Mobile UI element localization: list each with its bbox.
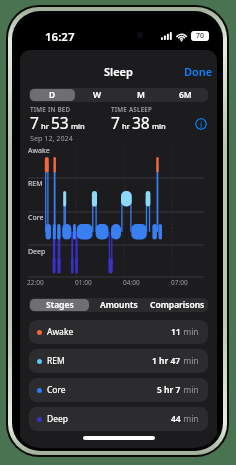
button[interactable]: Comparisons [148, 299, 207, 311]
staticText: 7 [30, 112, 39, 133]
button[interactable]: W [75, 89, 119, 101]
button[interactable]: Deep [29, 407, 208, 431]
staticText: min [181, 384, 199, 396]
staticText: TIME ASLEEP [111, 105, 153, 114]
staticText: Awake [28, 146, 50, 156]
staticText: M [137, 89, 145, 101]
staticText: min [150, 121, 166, 131]
staticText: 7 [111, 112, 120, 133]
button[interactable]: Stages [30, 299, 89, 311]
staticText: min [69, 121, 85, 131]
staticText: hr [39, 121, 51, 131]
staticText: Sleep [104, 64, 133, 79]
staticText: 53 [51, 112, 69, 133]
button[interactable]: M [119, 89, 163, 101]
staticText: min [181, 355, 199, 367]
staticText: W [93, 89, 102, 101]
staticText: Core [47, 384, 66, 396]
staticText: D [49, 89, 56, 101]
staticText: Amounts [100, 299, 138, 311]
staticText: Core [28, 213, 44, 223]
button[interactable]: REM [29, 349, 208, 373]
staticText: REM [28, 179, 43, 189]
button[interactable]: D [30, 89, 75, 101]
button[interactable]: Done [178, 59, 217, 84]
button[interactable]: 6M [163, 89, 207, 101]
staticText: 70 [196, 31, 205, 41]
staticText: Deep [47, 413, 69, 425]
staticText: REM [47, 355, 65, 367]
staticText: 04:00 [123, 278, 140, 287]
staticText: 01:00 [75, 278, 92, 287]
button[interactable]: Awake [29, 320, 208, 344]
button[interactable]: Amounts [89, 299, 148, 311]
staticText: hr [120, 121, 132, 131]
staticText: min [181, 413, 199, 425]
staticText: Awake [47, 326, 74, 338]
staticText: 5 hr 7 [157, 384, 181, 396]
staticText: 22:00 [27, 278, 44, 287]
staticText: 07:00 [171, 278, 188, 287]
staticText: 6M [179, 89, 192, 101]
staticText: 11 [171, 326, 181, 338]
staticText: 38 [132, 112, 150, 133]
staticText: TIME IN BED [30, 105, 71, 114]
staticText: Stages [46, 299, 74, 311]
staticText: min [181, 326, 199, 338]
staticText: i [200, 119, 203, 130]
staticText: Comparisons [150, 299, 205, 311]
staticText: 44 [171, 413, 181, 425]
button[interactable]: Core [29, 378, 208, 402]
staticText: Sep 12, 2024 [30, 133, 73, 143]
staticText: 16:27 [45, 29, 75, 45]
staticText: 1 hr 47 [152, 355, 181, 367]
staticText: Done [184, 64, 213, 79]
button[interactable]: Info [195, 118, 207, 130]
staticText: Deep [28, 247, 46, 257]
